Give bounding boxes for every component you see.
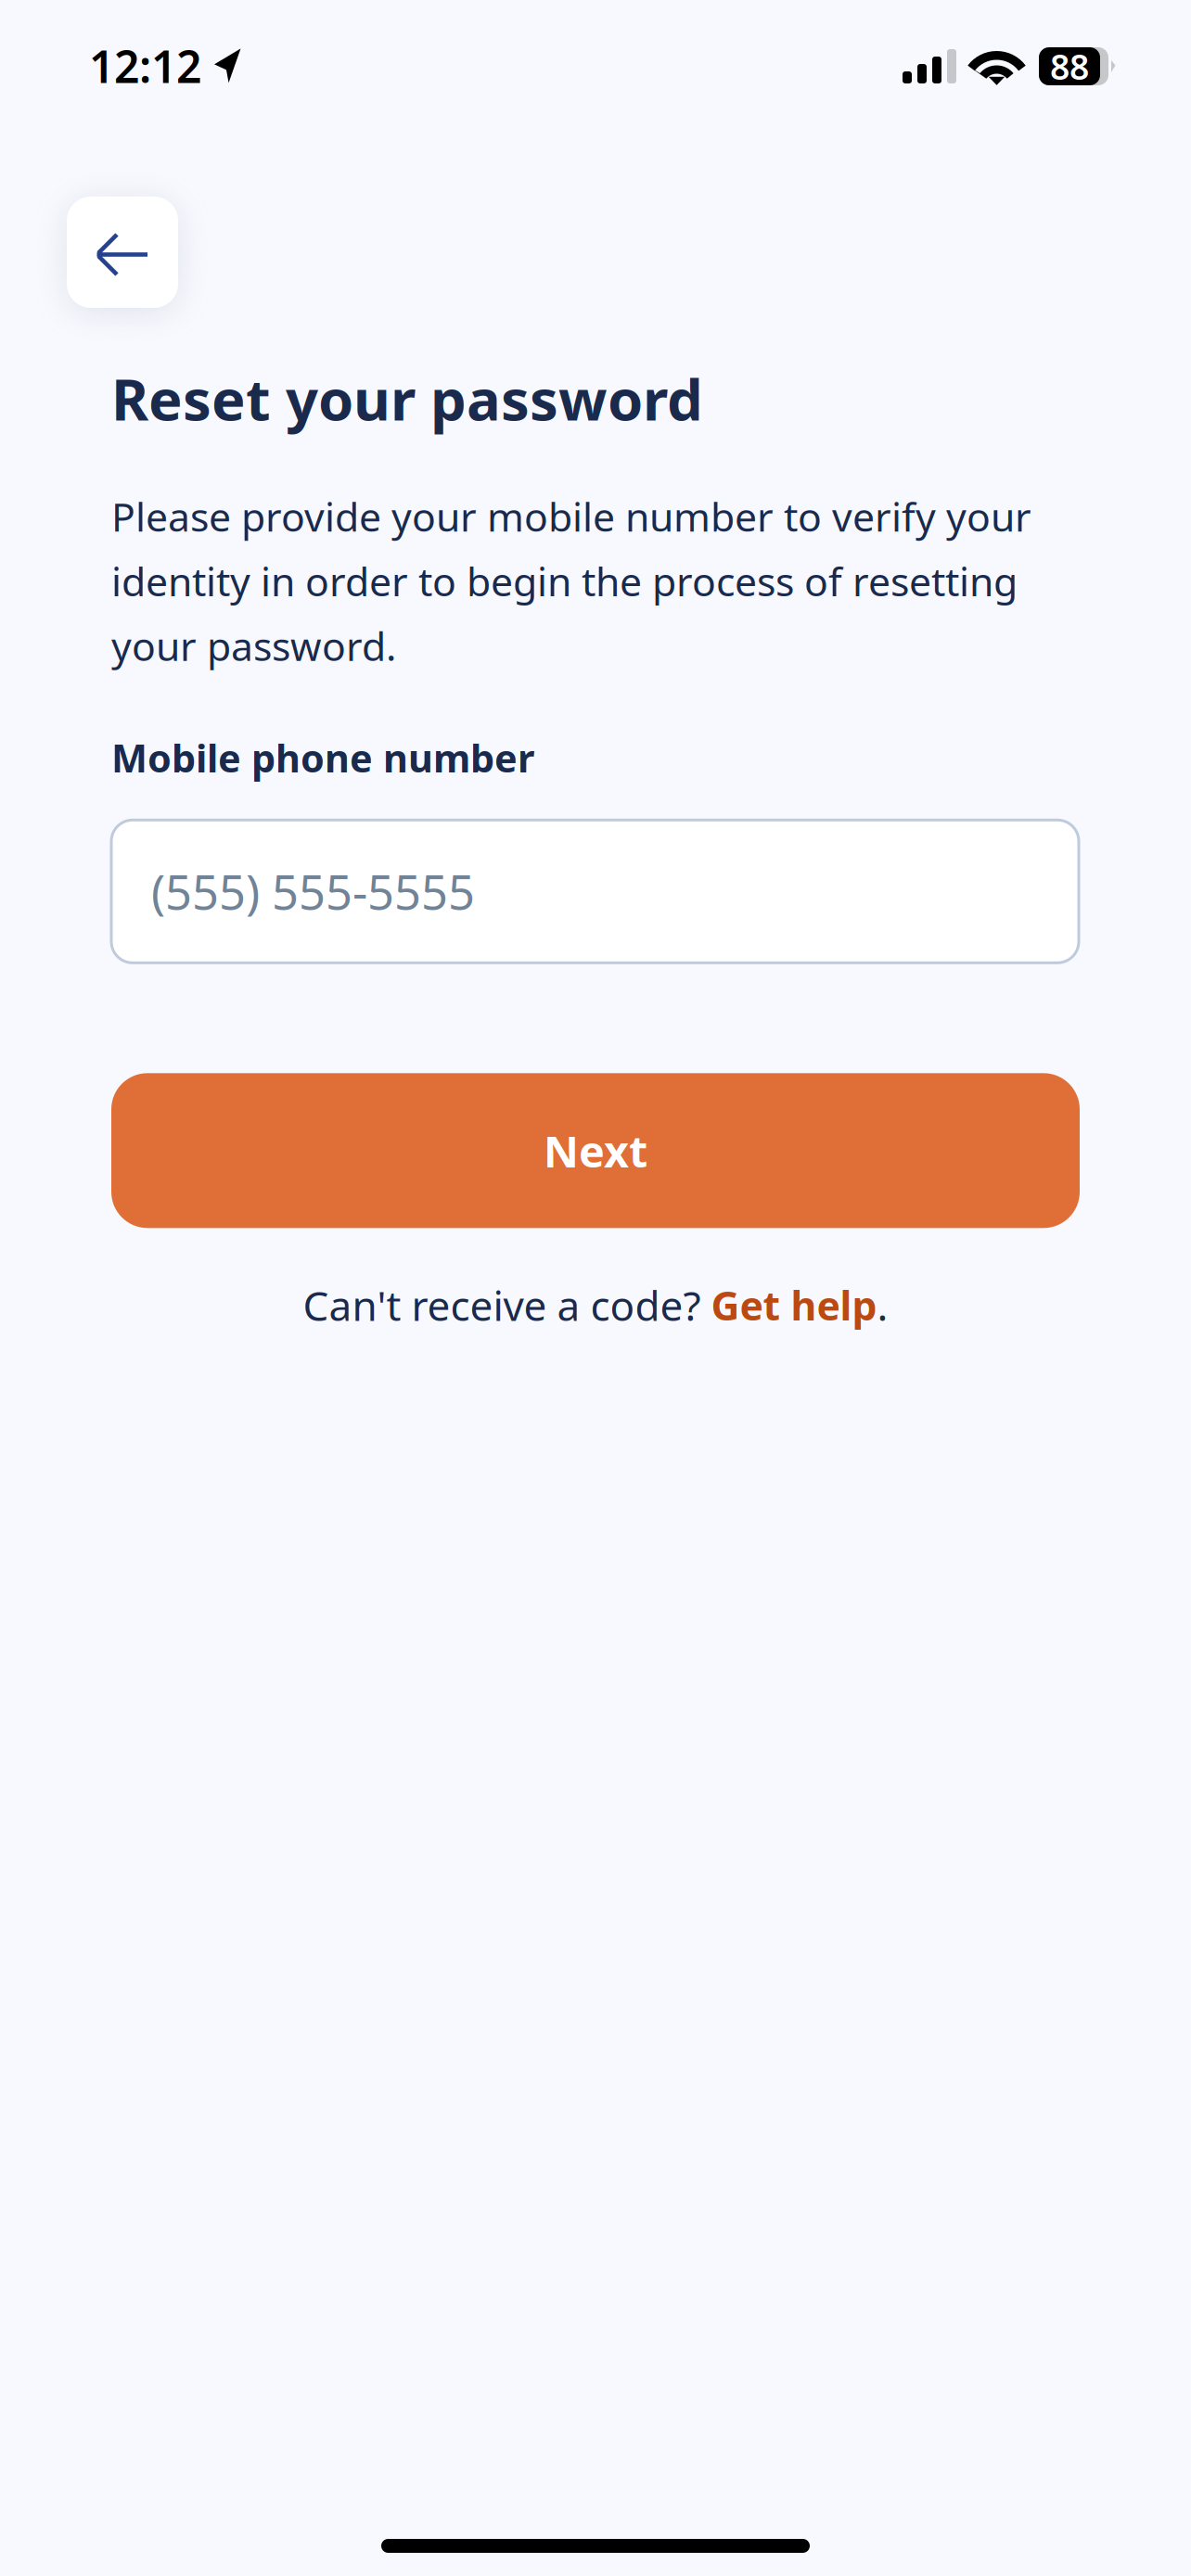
button[interactable]: Mobile phone number: [111, 820, 1079, 963]
staticText: Mobile phone number: [111, 732, 534, 783]
staticText: (555) 555-5555: [151, 860, 475, 923]
button[interactable]: Next: [111, 1073, 1080, 1228]
staticText: 12:12: [89, 36, 201, 95]
button[interactable]: Back: [67, 197, 178, 308]
button[interactable]: Get help: [711, 1279, 877, 1331]
staticText: .: [877, 1278, 888, 1332]
staticText: 88: [1050, 43, 1089, 89]
staticText: Get help: [711, 1279, 877, 1331]
staticText: Next: [544, 1122, 647, 1179]
staticText: Can't receive a code?: [303, 1278, 711, 1332]
staticText: Please provide your mobile number to ver…: [111, 490, 1031, 672]
staticText: Reset your password: [111, 361, 703, 436]
